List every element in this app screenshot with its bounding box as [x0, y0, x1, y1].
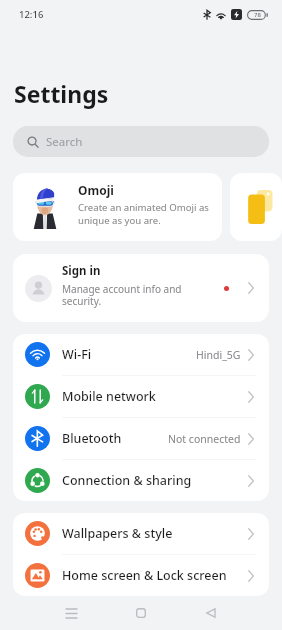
staticText: Mobile network — [62, 388, 248, 405]
button[interactable]: Connection & sharing — [13, 460, 269, 501]
button[interactable]: Wi-Fi — [13, 334, 269, 375]
staticText: Manage account info and security. — [62, 282, 182, 308]
staticText: Home screen & Lock screen — [62, 567, 248, 584]
button[interactable]: Recents — [36, 596, 106, 630]
button[interactable]: Omoji — [13, 173, 222, 241]
staticText: Create an animated Omoji as unique as yo… — [78, 201, 209, 227]
staticText: Search — [46, 134, 83, 150]
button[interactable]: Search — [13, 126, 269, 157]
staticText: Connection & sharing — [62, 472, 248, 489]
staticText: Settings — [14, 78, 109, 109]
button[interactable]: Home screen & Lock screen — [13, 555, 269, 596]
button[interactable]: Phone clone — [230, 173, 282, 241]
staticText: Sign in — [62, 263, 101, 279]
staticText: Wi-Fi — [62, 346, 196, 363]
staticText: 78 — [254, 11, 261, 19]
staticText: Wallpapers & style — [62, 525, 248, 542]
staticText: Hindi_5G — [196, 348, 241, 362]
button[interactable]: Sign in — [13, 254, 269, 322]
staticText: Bluetooth — [62, 430, 168, 447]
staticText: 12:16 — [19, 8, 44, 21]
button[interactable]: Bluetooth — [13, 418, 269, 459]
staticText: Omoji — [78, 182, 114, 198]
button[interactable]: Mobile network — [13, 376, 269, 417]
staticText: Not connected — [168, 432, 241, 446]
button[interactable]: Wallpapers & style — [13, 513, 269, 554]
button[interactable]: Back — [176, 596, 246, 630]
button[interactable]: Home — [106, 596, 176, 630]
